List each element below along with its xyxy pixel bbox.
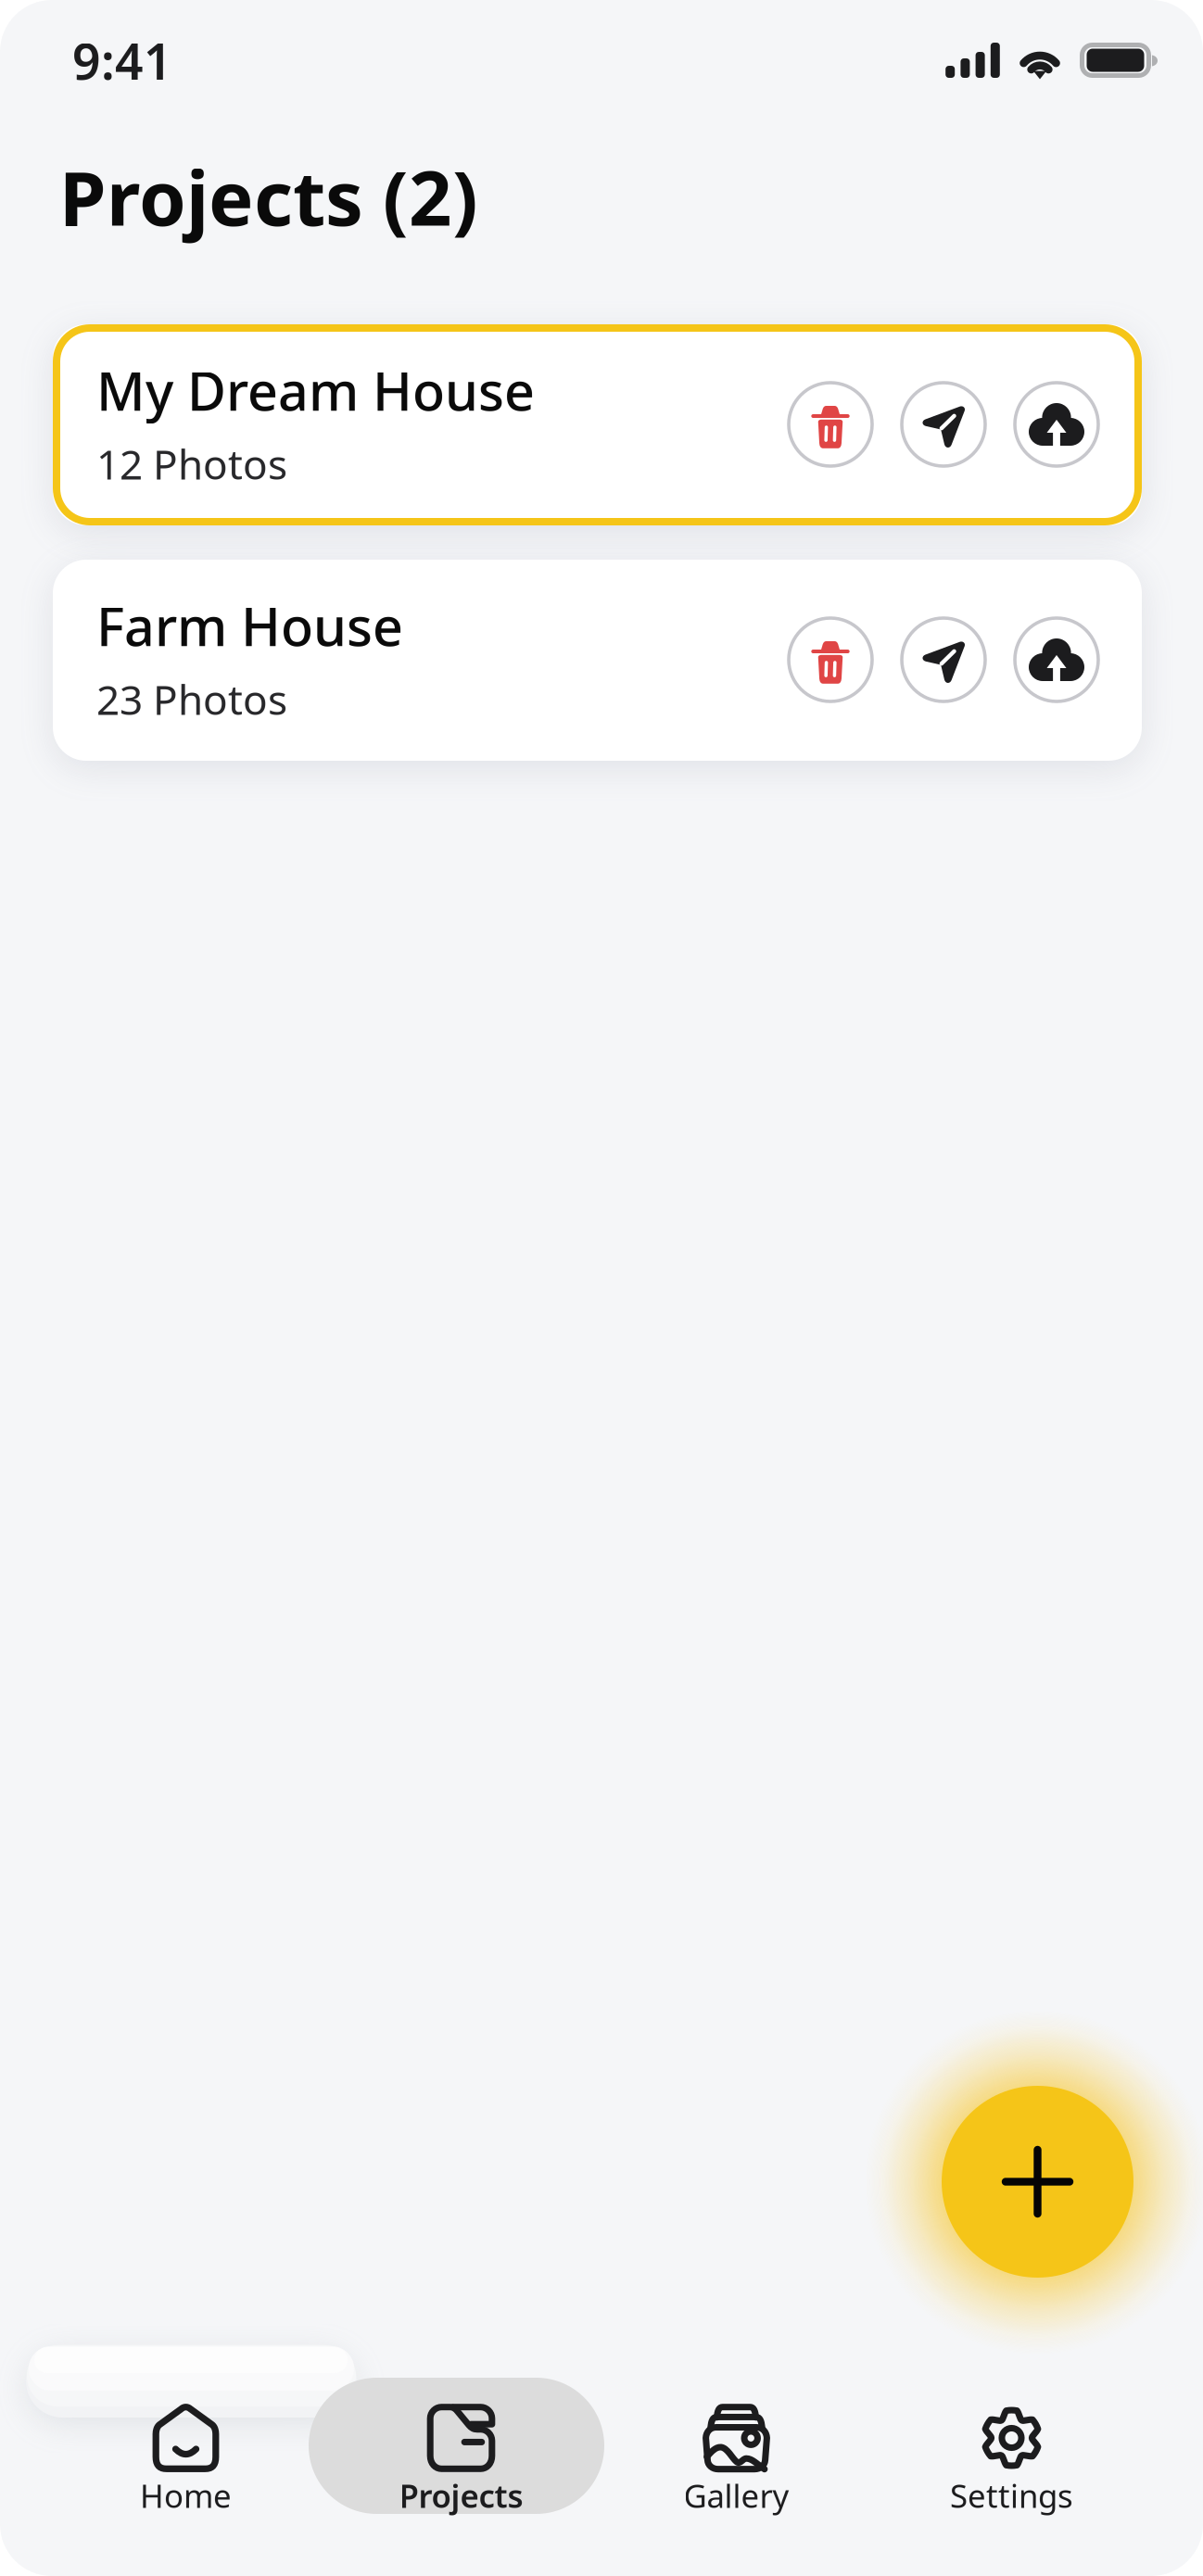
staticText: Projects (2) <box>59 146 478 246</box>
button[interactable]: Home <box>48 2378 323 2514</box>
staticText: 12 Photos <box>96 437 287 491</box>
button[interactable]: Upload project <box>1015 618 1098 701</box>
button[interactable]: Delete project <box>789 618 872 701</box>
button[interactable]: Add project <box>942 2086 1133 2278</box>
staticText: Projects <box>399 2474 523 2517</box>
button[interactable]: Share project <box>902 383 985 466</box>
button[interactable]: My Dream House <box>53 324 1142 525</box>
button[interactable]: Upload project <box>1015 383 1098 466</box>
staticText: 23 Photos <box>96 672 287 726</box>
button[interactable]: Gallery <box>599 2378 874 2514</box>
staticText: Settings <box>950 2474 1073 2517</box>
staticText: Farm House <box>96 590 403 661</box>
button[interactable]: Projects <box>323 2378 599 2514</box>
staticText: Gallery <box>684 2474 789 2517</box>
staticText: My Dream House <box>96 355 535 425</box>
button[interactable]: Farm House <box>53 560 1142 761</box>
staticText: Home <box>140 2474 232 2517</box>
button[interactable]: Share project <box>902 618 985 701</box>
button[interactable]: Settings <box>874 2378 1149 2514</box>
button[interactable]: Delete project <box>789 383 872 466</box>
staticText: 9:41 <box>72 28 172 93</box>
